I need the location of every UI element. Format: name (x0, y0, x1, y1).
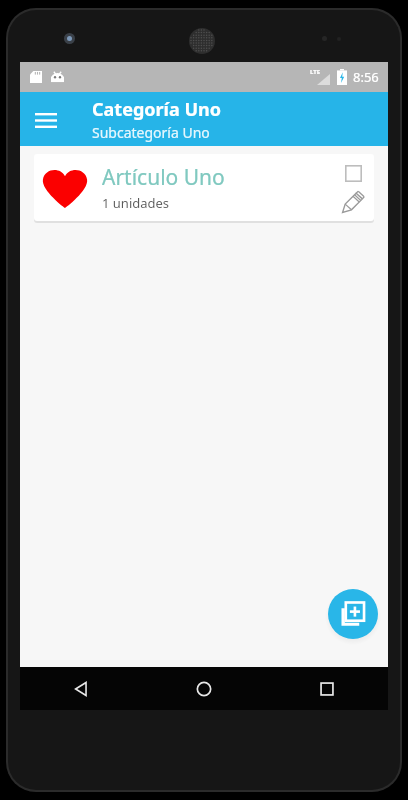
button[interactable]: Select item (340, 160, 366, 186)
staticText: LTE (310, 68, 321, 76)
staticText: Artículo Uno (102, 163, 225, 192)
button[interactable]: Back (20, 667, 142, 710)
button[interactable]: Artículo Uno (34, 154, 374, 221)
button[interactable]: Add item (328, 589, 378, 639)
staticText: 1 unidades (102, 194, 170, 212)
staticText: 8:56 (353, 68, 379, 86)
staticText: Subcategoría Uno (92, 123, 210, 142)
button[interactable]: Edit item (338, 187, 368, 217)
button[interactable]: Recent apps (265, 667, 388, 710)
button[interactable]: Open navigation drawer (28, 102, 64, 138)
button[interactable]: Home (142, 667, 265, 710)
staticText: Categoría Uno (92, 97, 221, 122)
